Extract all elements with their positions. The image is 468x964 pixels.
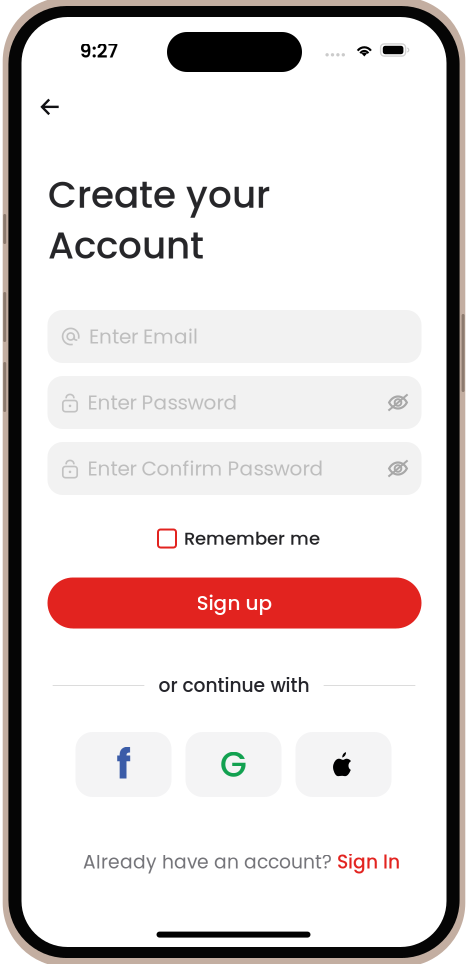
button[interactable]: Continue with Apple <box>295 732 391 797</box>
button[interactable]: Back <box>40 86 84 128</box>
staticText: Create your <box>48 168 270 221</box>
staticText: or continue with <box>158 672 309 698</box>
staticText: G <box>220 740 247 789</box>
button[interactable]: Continue with Google <box>185 732 281 797</box>
staticText: Sign In <box>337 849 400 875</box>
staticText: Enter Password <box>87 388 237 416</box>
staticText: Remember me <box>184 526 320 551</box>
button[interactable]: Continue with Facebook <box>75 732 171 797</box>
staticText: Already have an account? <box>83 849 332 875</box>
button[interactable]: Already have an account? <box>81 849 401 875</box>
button[interactable]: Remember me <box>158 526 333 550</box>
staticText: 9:27 <box>80 38 118 64</box>
staticText: f <box>116 736 130 792</box>
staticText: Sign up <box>196 589 272 617</box>
staticText: Enter Email <box>89 322 198 350</box>
staticText: Enter Confirm Password <box>87 454 323 482</box>
staticText: Account <box>48 219 204 272</box>
button[interactable]: Sign up <box>47 577 421 628</box>
